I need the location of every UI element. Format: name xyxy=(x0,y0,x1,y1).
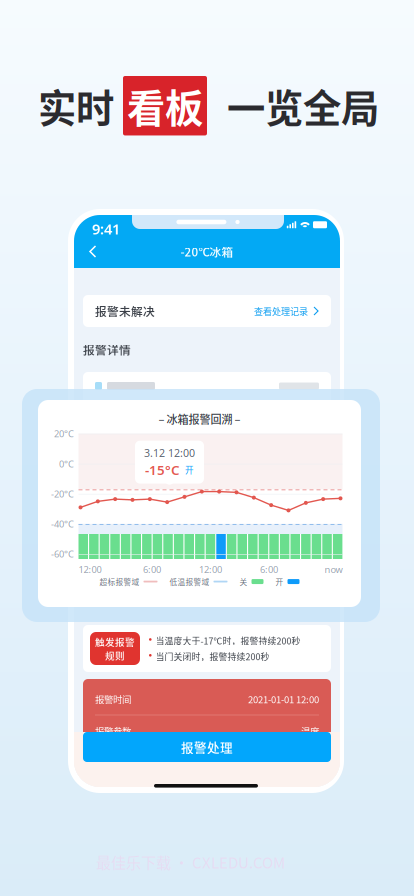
staticText: -15°C xyxy=(145,461,180,479)
staticText: 低温报警域 xyxy=(169,576,209,587)
staticText: 查看处理记录 xyxy=(254,304,308,317)
staticText: 开 xyxy=(185,463,194,476)
button[interactable]: 报警处理 xyxy=(83,732,331,762)
staticText: – 冰箱报警回溯 – xyxy=(158,411,240,427)
staticText: 温度 xyxy=(301,724,319,738)
staticText: -60°C xyxy=(51,548,74,560)
staticText: 当温度大于-17°C时，报警持续200秒 xyxy=(156,634,301,647)
staticText: 报警详情 xyxy=(83,341,131,358)
staticText: 0°C xyxy=(59,458,74,470)
staticText: 看板 xyxy=(127,78,203,133)
staticText: 3.12 12:00 xyxy=(144,446,195,460)
staticText: 6:00 xyxy=(260,563,278,576)
staticText: -20°C冰箱 xyxy=(180,243,233,260)
staticText: 20°C xyxy=(54,427,74,440)
button[interactable]: 返回 xyxy=(80,238,106,264)
staticText: 关 xyxy=(239,576,247,587)
staticText: 12:00 xyxy=(78,563,101,576)
staticText: 12:00 xyxy=(199,563,222,576)
staticText: 9:41 xyxy=(92,219,120,238)
staticText: 报警时间 xyxy=(95,692,131,706)
staticText: 实时 xyxy=(38,78,114,133)
staticText: 6:00 xyxy=(143,563,161,576)
staticText: 最佳乐下载 · CXLEDU.COM xyxy=(96,851,285,873)
staticText: 开 xyxy=(275,576,283,587)
staticText: 规则 xyxy=(105,648,125,662)
staticText: 报警处理 xyxy=(181,738,233,756)
staticText: 超标报警域 xyxy=(99,576,139,587)
staticText: 一览全局 xyxy=(227,78,379,133)
staticText: -40°C xyxy=(51,518,74,530)
staticText: 2021-01-01 12:00 xyxy=(248,692,319,706)
button[interactable]: 报警未解决 xyxy=(83,295,331,327)
staticText: 报警未解决 xyxy=(95,302,155,319)
staticText: 当门关闭时，报警持续200秒 xyxy=(156,650,270,663)
staticText: now xyxy=(324,563,342,576)
staticText: 触发报警 xyxy=(95,635,135,648)
staticText: 报警参数 xyxy=(95,724,131,738)
staticText: -20°C xyxy=(51,488,74,500)
